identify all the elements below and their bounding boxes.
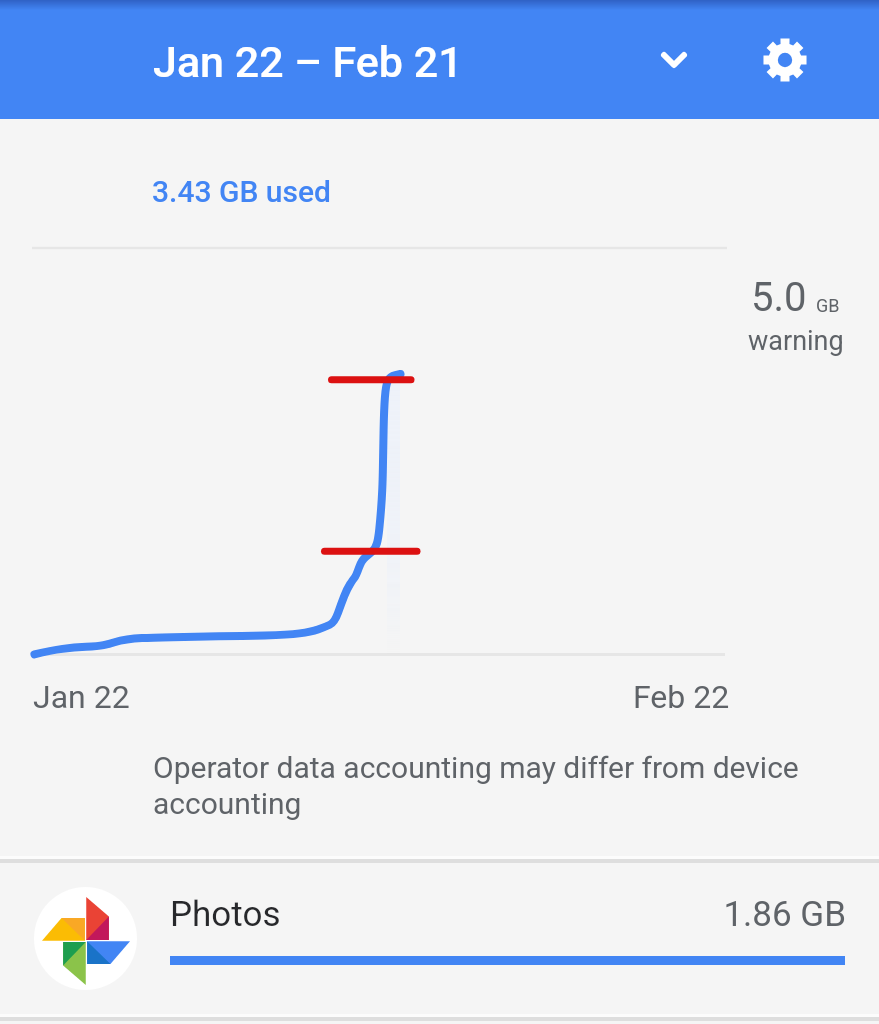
staticText: GB (816, 295, 840, 316)
button[interactable]: Jan 22 – Feb 21 (140, 20, 718, 100)
button[interactable]: Settings (752, 27, 818, 93)
staticText: Jan 22 (33, 678, 130, 716)
staticText: 1.86 GB (566, 894, 846, 935)
staticText: Jan 22 – Feb 21 (153, 37, 463, 87)
button[interactable]: Photos (0, 861, 879, 1016)
staticText: Operator data accounting may differ from… (153, 750, 833, 821)
staticText: Feb 22 (633, 678, 730, 716)
staticText: 3.43 GB used (152, 174, 331, 209)
other: Change billing cycle (642, 28, 706, 92)
staticText: Photos (170, 894, 281, 935)
staticText: warning (748, 325, 844, 357)
staticText: 5.0 (751, 274, 807, 321)
